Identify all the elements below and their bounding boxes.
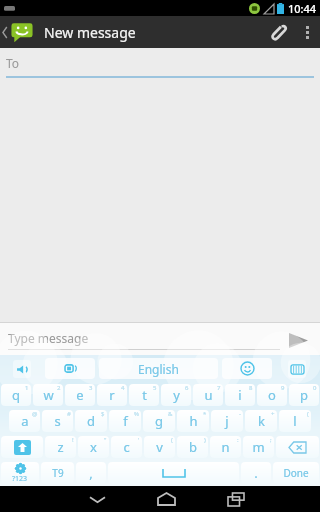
button[interactable]: - (211, 410, 243, 432)
button[interactable]: Theme (45, 358, 95, 379)
button[interactable]: ; (243, 436, 274, 458)
staticText: 6 (185, 384, 189, 392)
staticText: j (225, 412, 229, 430)
staticText: T9 (52, 466, 64, 480)
staticText: ; (270, 436, 272, 444)
button[interactable]: 1 (1, 384, 31, 406)
staticText: q (12, 386, 20, 404)
staticText: ) (204, 436, 206, 444)
staticText: z (57, 438, 64, 456)
button[interactable]: ( (279, 410, 311, 432)
button[interactable]: , (76, 462, 106, 484)
staticText: @ (32, 410, 38, 418)
staticText: + (271, 410, 275, 418)
staticText: ' (138, 436, 140, 444)
staticText: * (203, 410, 207, 418)
button[interactable]: 8 (225, 384, 255, 406)
staticText: # (67, 410, 71, 418)
staticText: 5 (153, 384, 157, 392)
button[interactable]: ?123 (1, 462, 39, 484)
staticText: 9 (281, 384, 285, 392)
button[interactable]: ' (111, 436, 142, 458)
staticText: l (293, 412, 297, 430)
button[interactable]: Recent apps (201, 486, 270, 512)
staticText: s (54, 412, 61, 430)
staticText: 3 (89, 384, 93, 392)
staticText: a (21, 412, 29, 430)
button[interactable]: Emoji (222, 358, 272, 379)
staticText: m (252, 438, 265, 456)
staticText: $ (101, 410, 105, 418)
staticText: i (238, 386, 242, 404)
staticText: v (156, 438, 163, 456)
button[interactable]: More options (294, 16, 320, 48)
button[interactable]: Space (108, 462, 239, 484)
button[interactable]: Home (132, 486, 201, 512)
staticText: t (142, 386, 147, 404)
staticText: ( (171, 436, 173, 444)
button[interactable]: English (99, 358, 218, 379)
button[interactable]: To (6, 48, 314, 80)
staticText: 1 (25, 384, 29, 392)
button[interactable]: Voice input (0, 355, 43, 382)
staticText: p (300, 386, 308, 404)
button[interactable]: @ (9, 410, 40, 432)
button[interactable]: # (42, 410, 73, 432)
staticText: f (123, 412, 128, 430)
button[interactable]: 7 (193, 384, 223, 406)
button[interactable]: 3 (65, 384, 95, 406)
button[interactable]: Shift (1, 436, 43, 458)
staticText: Done (283, 466, 309, 480)
staticText: u (204, 386, 213, 404)
staticText: k (258, 412, 265, 430)
button[interactable]: ( (144, 436, 175, 458)
button[interactable]: Hide keyboard (63, 486, 132, 512)
button[interactable]: + (245, 410, 277, 432)
staticText: " (104, 436, 107, 444)
staticText: - (239, 410, 241, 418)
staticText: , (89, 464, 93, 482)
staticText: 2 (57, 384, 61, 392)
button[interactable]: $ (75, 410, 107, 432)
button[interactable]: ! (45, 436, 76, 458)
button[interactable]: 4 (97, 384, 127, 406)
button[interactable]: & (143, 410, 175, 432)
button[interactable]: : (210, 436, 241, 458)
button[interactable]: % (109, 410, 141, 432)
staticText: : (237, 436, 239, 444)
staticText: y (173, 386, 180, 404)
staticText: English (138, 361, 179, 377)
button[interactable]: " (78, 436, 109, 458)
staticText: e (76, 386, 84, 404)
staticText: g (155, 412, 163, 430)
staticText: ! (72, 436, 74, 444)
staticText: ?123 (12, 474, 28, 484)
button[interactable]: 5 (129, 384, 159, 406)
staticText: 7 (217, 384, 221, 392)
staticText: r (109, 386, 115, 404)
button[interactable]: Back (0, 20, 36, 44)
button[interactable]: Type message (8, 330, 280, 350)
button[interactable]: * (177, 410, 209, 432)
staticText: & (168, 410, 173, 418)
staticText: o (268, 386, 276, 404)
staticText: d (87, 412, 95, 430)
button[interactable]: T9 (41, 462, 74, 484)
button[interactable]: . (241, 462, 271, 484)
staticText: w (43, 386, 54, 404)
button[interactable]: ) (177, 436, 208, 458)
button[interactable]: Backspace (276, 436, 319, 458)
button[interactable]: 0 (289, 384, 319, 406)
button[interactable]: 6 (161, 384, 191, 406)
staticText: 4 (121, 384, 125, 392)
staticText: c (123, 438, 130, 456)
button[interactable]: Send (280, 325, 316, 355)
staticText: New message (44, 23, 136, 42)
staticText: h (189, 412, 198, 430)
button[interactable]: 2 (33, 384, 63, 406)
button[interactable]: Attach (260, 16, 294, 48)
button[interactable]: 9 (257, 384, 287, 406)
button[interactable]: Done (273, 462, 319, 484)
staticText: . (254, 464, 258, 482)
button[interactable]: Keyboard layout (274, 355, 320, 382)
